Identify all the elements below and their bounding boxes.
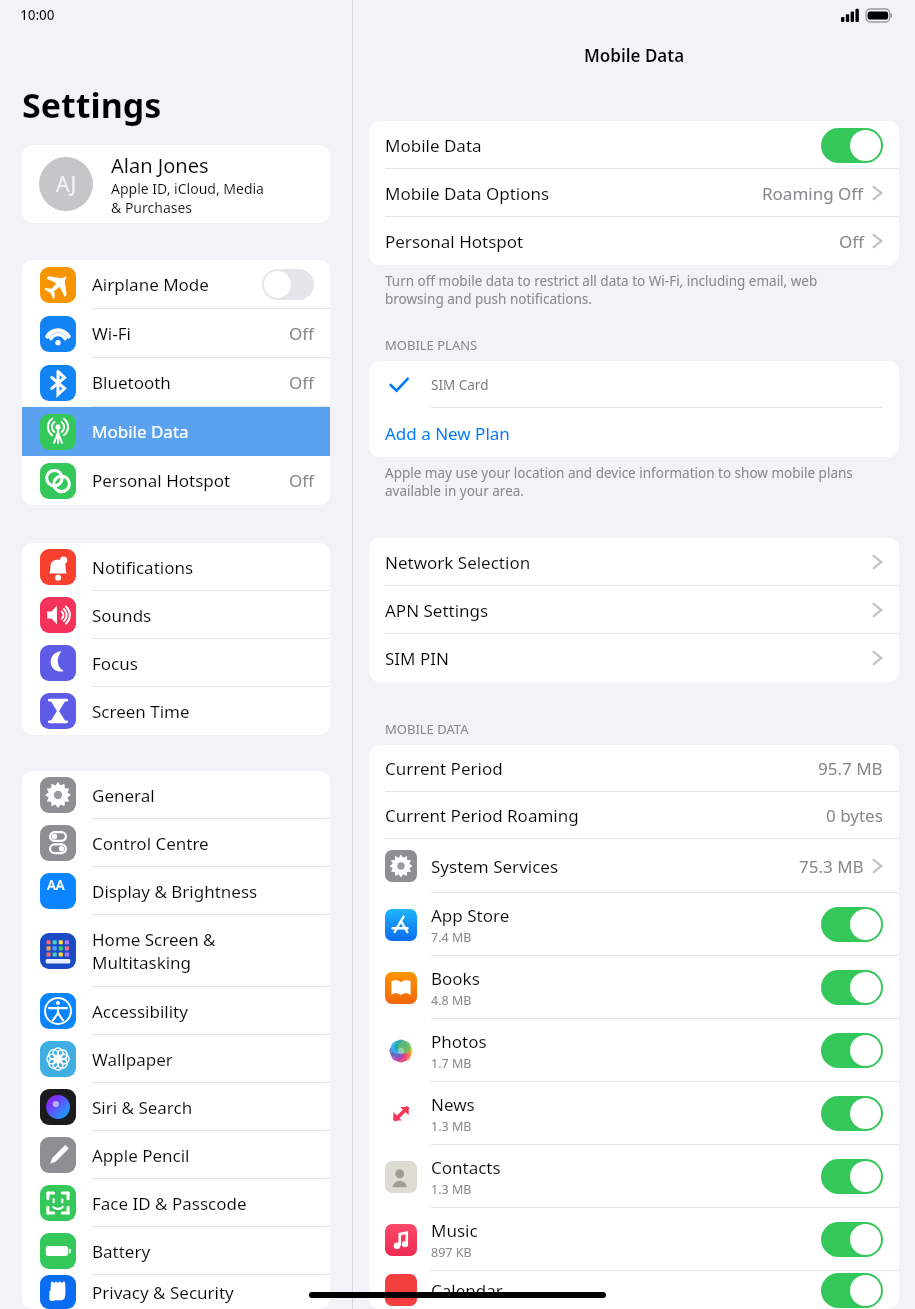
button[interactable]: Display & Brightness [22,867,330,915]
button[interactable]: Screen Time [22,687,330,735]
button[interactable]: Privacy & Security [22,1275,330,1309]
button[interactable]: Mobile Data [369,121,899,169]
staticText: AJ [56,170,77,199]
button[interactable]: System Services [369,839,899,893]
button[interactable]: Toggle on [821,1159,883,1194]
staticText: Home Screen & [92,928,216,951]
staticText: Wi-Fi [92,322,131,345]
staticText: 1.3 MB [431,1181,472,1198]
staticText: Off [839,230,864,253]
button[interactable]: Add a New Plan [369,409,899,457]
staticText: Current Period [385,757,503,780]
staticText: Mobile Data Options [385,182,550,205]
staticText: Apple ID, iCloud, Media [111,179,264,198]
staticText: Notifications [92,556,194,579]
staticText: Settings [22,82,162,128]
staticText: Calendar [431,1279,503,1302]
staticText: 10:00 [20,6,55,24]
staticText: Screen Time [92,700,190,723]
button[interactable]: Apple Pencil [22,1131,330,1179]
staticText: Books [431,967,480,990]
button[interactable]: Toggle on [821,970,883,1005]
button[interactable]: SIM Card [369,361,899,409]
button[interactable]: SIM PIN [369,634,899,682]
button[interactable]: Mobile Data Options [369,169,899,217]
staticText: News [431,1093,475,1116]
staticText: Personal Hotspot [92,469,231,492]
staticText: Control Centre [92,832,209,855]
staticText: General [92,784,155,807]
button[interactable]: Network Selection [369,538,899,586]
staticText: AA [47,876,65,894]
staticText: App Store [431,904,510,927]
staticText: 897 KB [431,1244,472,1261]
button[interactable]: Battery [22,1227,330,1275]
staticText: Music [431,1219,478,1242]
staticText: 75.3 MB [799,855,864,878]
staticText: Apple may use your location and device i… [385,464,875,500]
staticText: System Services [431,855,559,878]
staticText: Mobile Data [385,134,482,157]
button[interactable]: Notifications [22,543,330,591]
staticText: APN Settings [385,599,489,622]
staticText: Apple Pencil [92,1144,190,1167]
button[interactable]: Bluetooth [22,358,330,407]
staticText: Network Selection [385,551,531,574]
staticText: 7.4 MB [431,929,472,946]
staticText: 95.7 MB [818,757,883,780]
staticText: Sounds [92,604,152,627]
staticText: 4.8 MB [431,992,472,1009]
staticText: Off [289,371,314,394]
button[interactable]: Toggle on [821,1222,883,1257]
button[interactable]: Siri & Search [22,1083,330,1131]
button[interactable]: Current Period [369,745,899,792]
button[interactable]: Wi-Fi [22,309,330,358]
button[interactable]: General [22,771,330,819]
button[interactable]: Personal Hotspot [369,217,899,265]
staticText: MOBILE PLANS [385,336,478,354]
staticText: Mobile Data [92,420,189,443]
button[interactable]: Photos [369,1019,899,1082]
staticText: Siri & Search [92,1096,193,1119]
button[interactable]: Toggle on [821,128,883,163]
staticText: Accessibility [92,1000,188,1023]
button[interactable]: Airplane Mode [22,260,330,309]
button[interactable]: Focus [22,639,330,687]
staticText: Contacts [431,1156,501,1179]
button[interactable]: Accessibility [22,987,330,1035]
staticText: Current Period Roaming [385,804,579,827]
button[interactable]: Home Screen & [22,915,330,987]
button[interactable]: Music [369,1208,899,1271]
button[interactable]: Calendar [369,1271,899,1309]
button[interactable]: Current Period Roaming [369,792,899,839]
button[interactable]: Toggle on [821,1096,883,1131]
staticText: Multitasking [92,951,192,974]
button[interactable]: News [369,1082,899,1145]
button[interactable]: App Store [369,893,899,956]
button[interactable]: Sounds [22,591,330,639]
staticText: 1.3 MB [431,1118,472,1135]
button[interactable]: Toggle on [821,907,883,942]
button[interactable]: Mobile Data [22,407,330,456]
staticText: & Purchases [111,198,193,217]
staticText: Airplane Mode [92,273,209,296]
button[interactable]: Personal Hotspot [22,456,330,505]
button[interactable]: Toggle off [262,269,314,300]
button[interactable]: APN Settings [369,586,899,634]
button[interactable]: Toggle on [821,1033,883,1068]
staticText: Battery [92,1240,151,1263]
button[interactable]: Contacts [369,1145,899,1208]
staticText: MOBILE DATA [385,720,469,738]
staticText: Personal Hotspot [385,230,524,253]
button[interactable]: Control Centre [22,819,330,867]
button[interactable]: Face ID & Passcode [22,1179,330,1227]
button[interactable]: Books [369,956,899,1019]
staticText: Off [289,322,314,345]
button[interactable]: Wallpaper [22,1035,330,1083]
staticText: Alan Jones [111,152,209,179]
staticText: 0 bytes [826,804,883,827]
staticText: Turn off mobile data to restrict all dat… [385,272,875,308]
button[interactable]: AJ [22,145,330,223]
button[interactable]: Toggle on [821,1273,883,1308]
staticText: SIM PIN [385,647,449,670]
